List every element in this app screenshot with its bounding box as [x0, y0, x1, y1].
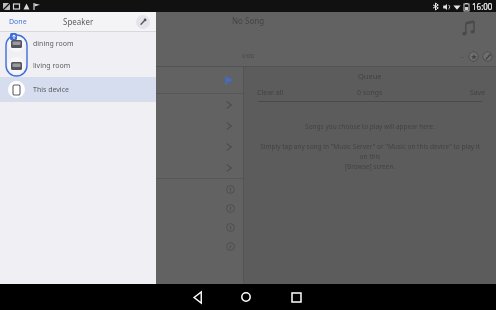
- staticText: Speaker: [63, 16, 94, 27]
- button[interactable]: Rating: [468, 51, 479, 62]
- button[interactable]: [0, 157, 243, 178]
- button[interactable]: Stop: [44, 22, 59, 37]
- button[interactable]: Speaker settings: [136, 15, 150, 29]
- button[interactable]: Info: [0, 236, 243, 255]
- button[interactable]: Info: [0, 179, 243, 198]
- staticText: dining room: [33, 39, 74, 49]
- button[interactable]: Clear all: [257, 88, 284, 98]
- staticText: living room: [33, 61, 71, 71]
- button[interactable]: Home: [228, 284, 264, 310]
- other: Info: [224, 202, 236, 214]
- button[interactable]: Save: [470, 88, 486, 98]
- button[interactable]: Back: [180, 284, 216, 310]
- button[interactable]: Download: [16, 49, 30, 63]
- button[interactable]: Open: [222, 73, 236, 87]
- button[interactable]: Settings: [482, 51, 493, 62]
- other: Info: [224, 221, 236, 233]
- button[interactable]: dining room: [0, 32, 156, 54]
- other: Info: [224, 240, 236, 252]
- button[interactable]: [0, 94, 243, 115]
- button[interactable]: Info: [0, 198, 243, 217]
- button[interactable]: Done: [9, 17, 27, 27]
- staticText: 16:00: [472, 1, 493, 12]
- button[interactable]: [0, 115, 243, 136]
- button[interactable]: [0, 136, 243, 157]
- button[interactable]: This device: [0, 77, 156, 101]
- button[interactable]: Previous: [20, 22, 35, 37]
- staticText: Queue: [358, 71, 382, 81]
- staticText: No Song: [232, 15, 265, 26]
- button[interactable]: Next: [99, 22, 114, 37]
- button[interactable]: Volume: [2, 49, 16, 63]
- other: Info: [224, 183, 236, 195]
- button[interactable]: living room: [0, 54, 156, 76]
- staticText: Songs you choose to play will appear her…: [244, 122, 496, 131]
- button[interactable]: Info: [0, 217, 243, 236]
- staticText: 0 songs: [357, 88, 383, 98]
- button[interactable]: Now playing artwork: [456, 16, 482, 42]
- button[interactable]: Recent apps: [278, 284, 314, 310]
- staticText: Simply tap any song in "Music Server" or…: [258, 142, 482, 171]
- staticText: This device: [33, 85, 69, 95]
- staticText: 0:00: [242, 52, 254, 60]
- button[interactable]: Play: [68, 18, 90, 40]
- staticText: --: [460, 53, 464, 61]
